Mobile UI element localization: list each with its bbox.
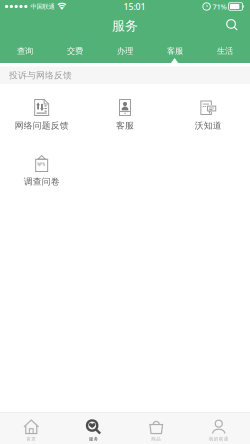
button[interactable]: 办理 bbox=[100, 43, 150, 59]
staticText: 查询 bbox=[17, 46, 33, 56]
staticText: 生活 bbox=[217, 46, 233, 56]
staticText: 中国联通 bbox=[30, 2, 54, 11]
staticText: 服务 bbox=[112, 18, 138, 34]
button[interactable]: 我的联通 bbox=[187, 413, 250, 444]
button[interactable]: 调查问卷 bbox=[0, 140, 83, 196]
staticText: 我的联通 bbox=[209, 436, 229, 442]
button[interactable]: 首页 bbox=[0, 413, 62, 444]
staticText: 客服 bbox=[116, 120, 134, 131]
button[interactable]: 服务 bbox=[62, 413, 125, 444]
staticText: 客服 bbox=[167, 46, 183, 56]
button[interactable]: 沃知道 bbox=[167, 84, 250, 140]
staticText: 商品 bbox=[151, 436, 161, 442]
staticText: 办理 bbox=[117, 46, 133, 56]
button[interactable]: 查询 bbox=[0, 43, 50, 59]
button[interactable]: 生活 bbox=[200, 43, 250, 59]
button[interactable]: 客服 bbox=[150, 43, 200, 59]
button[interactable]: 网络问题反馈 bbox=[0, 84, 83, 140]
staticText: 投诉与网络反馈 bbox=[9, 70, 72, 81]
button[interactable]: 客服 bbox=[83, 84, 167, 140]
staticText: 交费 bbox=[67, 46, 83, 56]
staticText: 调查问卷 bbox=[24, 176, 60, 187]
button[interactable]: 交费 bbox=[50, 43, 100, 59]
button[interactable]: Search bbox=[219, 14, 247, 38]
staticText: 网络问题反馈 bbox=[15, 120, 69, 131]
staticText: 15:01 bbox=[123, 0, 145, 12]
staticText: 沃知道 bbox=[195, 120, 222, 131]
staticText: 首页 bbox=[26, 436, 36, 442]
staticText: 服务 bbox=[89, 436, 99, 442]
button[interactable]: 商品 bbox=[125, 413, 187, 444]
staticText: 71% bbox=[213, 1, 227, 12]
